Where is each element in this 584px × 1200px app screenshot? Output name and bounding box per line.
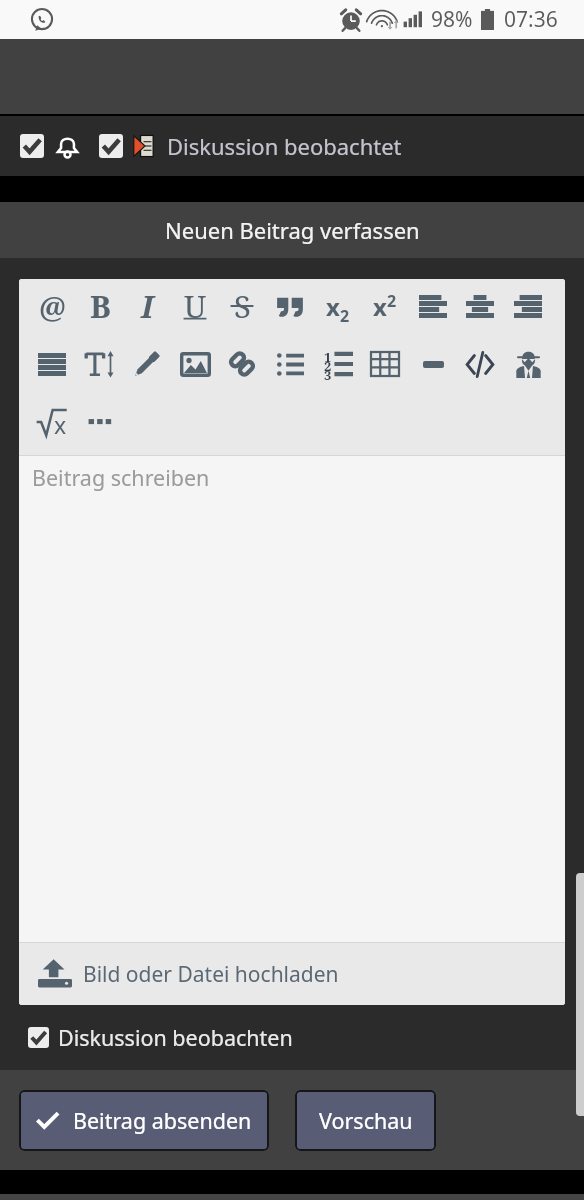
button[interactable]: Bild oder Datei hochladen [19,943,565,1005]
button[interactable]: Werkzeug [219,335,265,393]
button[interactable]: Werkzeug [219,279,265,335]
button[interactable]: Werkzeug [29,279,75,335]
staticText: @ [39,287,66,326]
staticText: Neuen Beitrag verfassen [165,215,420,245]
button[interactable]: Neuen Beitrag verfassen [0,202,584,258]
button[interactable]: Werkzeug [29,392,75,450]
button[interactable]: Werkzeug [505,335,551,393]
button[interactable]: Benachrichtigung [20,134,44,158]
staticText: 98% [431,5,473,34]
button[interactable]: Diskussion beobachten [0,1005,584,1070]
button[interactable]: Werkzeug [457,279,503,335]
staticText: 2 [324,357,332,375]
button[interactable]: Werkzeug [267,279,313,335]
button[interactable]: Werkzeug [362,279,408,335]
staticText: Bild oder Datei hochladen [83,960,339,989]
staticText: 1 [324,348,332,366]
button[interactable]: Werkzeug [410,335,456,393]
button[interactable]: Werkzeug [124,335,170,393]
staticText: 07:36 [504,5,558,34]
button[interactable]: Feed [99,134,123,158]
button[interactable]: Werkzeug [77,392,123,450]
button[interactable]: Werkzeug [172,279,218,335]
staticText: U [184,285,207,327]
staticText: Diskussion beobachtet [167,131,402,161]
button[interactable]: Werkzeug [315,279,361,335]
button[interactable]: Werkzeug [77,335,123,393]
button[interactable]: Benachrichtigung [0,116,584,176]
staticText: Vorschau [319,1106,413,1135]
button[interactable]: Werkzeug [77,279,123,335]
staticText: x [373,290,387,323]
button[interactable]: Beitrag absenden [19,1090,269,1151]
button[interactable]: Werkzeug [457,335,503,393]
staticText: 2 [340,305,350,327]
staticText: I [141,285,154,327]
button[interactable]: Werkzeug [410,279,456,335]
button[interactable]: Werkzeug [315,335,361,393]
staticText: S [234,285,251,327]
button[interactable]: Werkzeug [124,279,170,335]
staticText: 3 [324,366,332,384]
staticText: x [326,290,340,323]
staticText: Beitrag absenden [73,1106,252,1135]
staticText: B [90,285,111,327]
button[interactable]: Werkzeug [505,279,551,335]
button[interactable]: Werkzeug [172,335,218,393]
staticText: Diskussion beobachten [58,1023,293,1052]
staticText: 2 [387,290,397,312]
staticText: Beitrag schreiben [32,463,210,492]
button[interactable]: Werkzeug [29,335,75,393]
button[interactable]: Werkzeug [267,335,313,393]
staticText: x [54,409,67,440]
button[interactable]: Werkzeug [362,335,408,393]
button[interactable]: Vorschau [295,1090,436,1151]
